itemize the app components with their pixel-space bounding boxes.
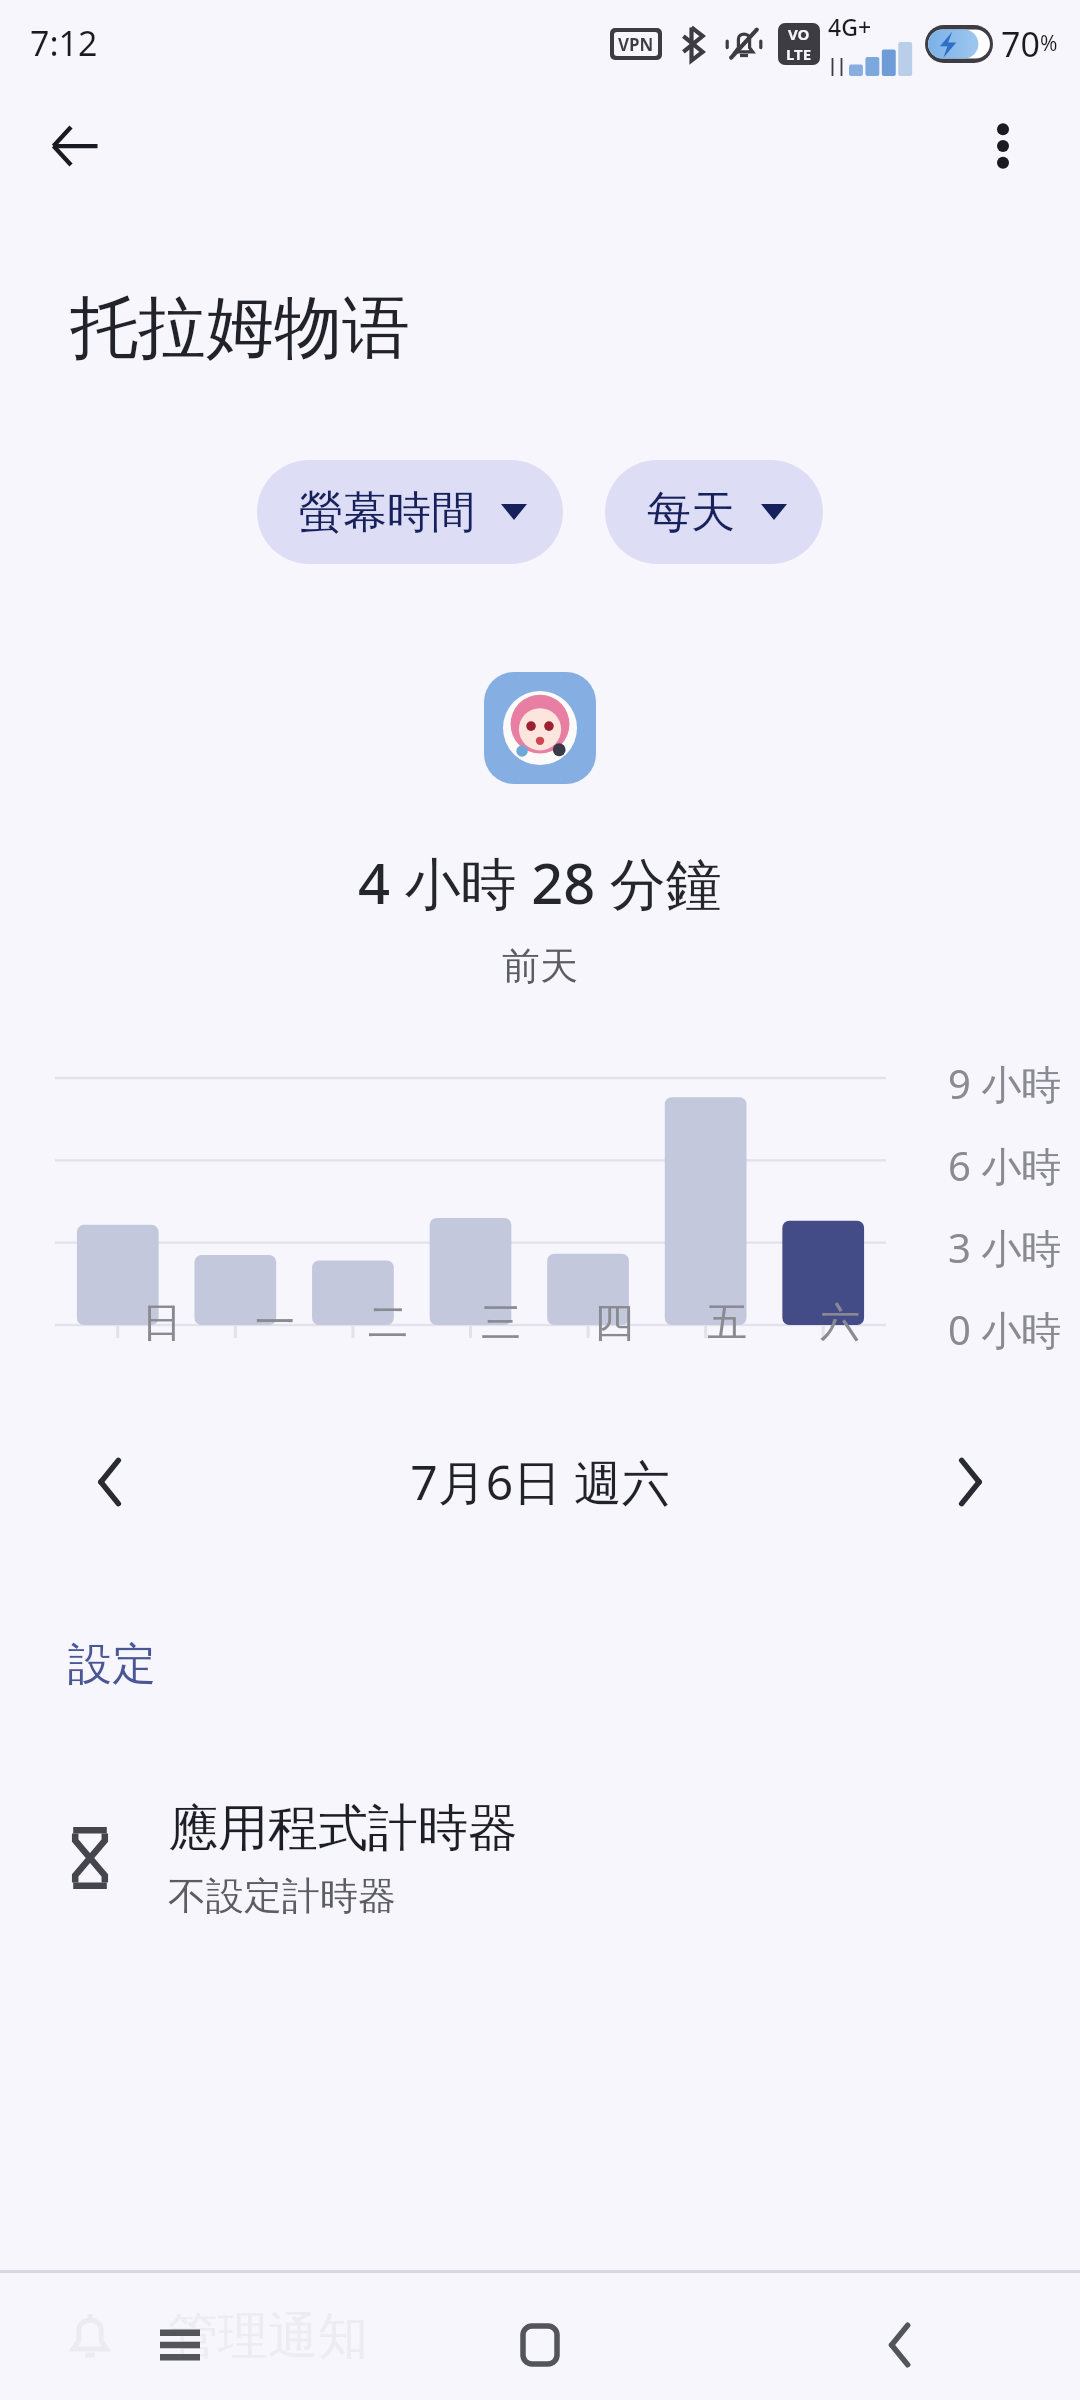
staticText: LTE [786, 44, 812, 64]
staticText: 日 [142, 1297, 182, 1347]
staticText: 70 [1001, 21, 1040, 67]
staticText: 螢幕時間 [299, 485, 475, 540]
staticText: 7月6日 週六 [410, 1449, 670, 1515]
button[interactable]: 螢幕時間 [257, 460, 563, 564]
staticText: 一 [255, 1297, 295, 1347]
staticText: 二 [368, 1297, 408, 1347]
staticText: 不設定計時器 [168, 1872, 396, 1920]
staticText: 9 小時 [948, 1056, 1062, 1111]
staticText: 3 小時 [948, 1220, 1062, 1275]
staticText: VPN [618, 33, 654, 56]
staticText: % [1040, 29, 1058, 58]
button[interactable]: Previous day [60, 1432, 160, 1532]
button[interactable]: 每天 [605, 460, 823, 564]
staticText: 4G+ [828, 11, 872, 42]
button[interactable]: Back [30, 101, 120, 191]
staticText: 五 [707, 1297, 747, 1347]
staticText: 7:12 [30, 20, 98, 66]
button[interactable]: Next day [920, 1432, 1020, 1532]
button[interactable]: Recents [0, 2290, 360, 2400]
staticText: 設定 [68, 1637, 156, 1692]
staticText: 前天 [502, 942, 578, 990]
button[interactable]: Back [720, 2290, 1080, 2400]
staticText: 托拉姆物语 [70, 286, 410, 372]
staticText: 三 [481, 1297, 521, 1347]
staticText: 應用程式計時器 [168, 1797, 518, 1860]
staticText: 0 小時 [948, 1302, 1062, 1355]
staticText: 六 [820, 1297, 860, 1347]
staticText: 四 [594, 1297, 634, 1347]
button[interactable]: Home [360, 2290, 720, 2400]
staticText: 管理通知 [168, 2305, 368, 2368]
button[interactable]: More options [958, 101, 1048, 191]
staticText: 每天 [647, 485, 735, 540]
staticText: VO [788, 24, 810, 44]
staticText: 4 小時 28 分鐘 [358, 844, 722, 920]
staticText: 6 小時 [948, 1138, 1062, 1193]
button[interactable]: 應用程式計時器 [0, 1778, 1080, 1938]
button[interactable]: 管理通知 [0, 2273, 1080, 2400]
